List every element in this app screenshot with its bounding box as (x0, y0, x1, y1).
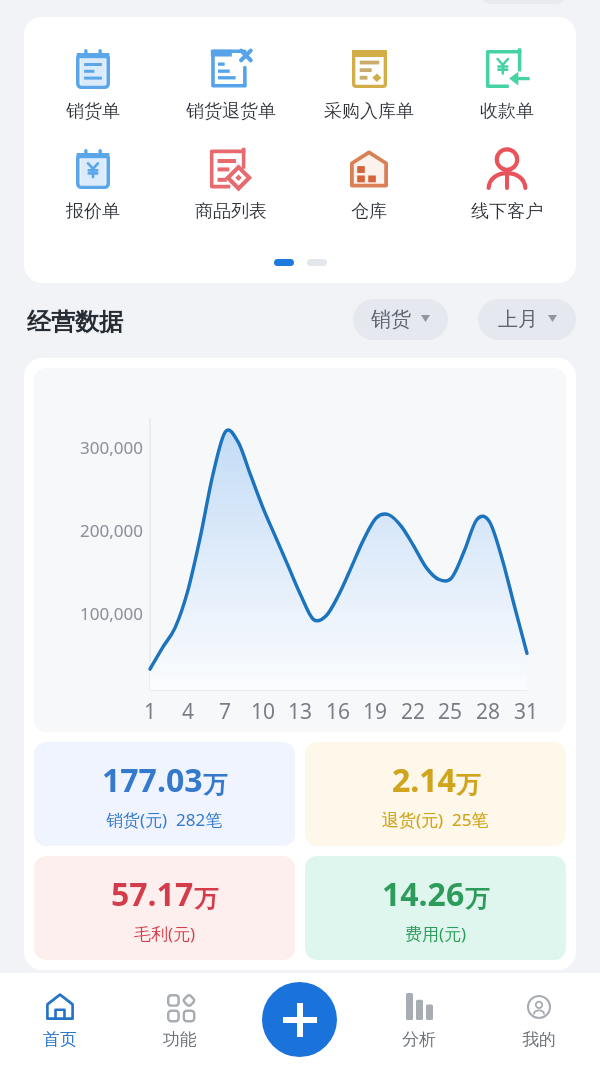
staticText: 1 (144, 697, 157, 726)
staticText: 仓库 (351, 200, 387, 223)
button[interactable]: 177.03 (34, 742, 295, 846)
staticText: 我的 (522, 1029, 556, 1050)
staticText: 退货(元) 25笔 (382, 808, 489, 831)
staticText: 25 (438, 697, 463, 726)
staticText: 销货单 (66, 100, 120, 123)
staticText: 57.17 (111, 872, 194, 916)
staticText: 177.03 (102, 758, 203, 802)
button[interactable]: 报价单 (24, 148, 162, 223)
button[interactable]: 首页 (20, 973, 100, 1067)
staticText: 销货 (371, 307, 411, 332)
staticText: 300,000 (80, 436, 143, 459)
staticText: 万 (456, 770, 480, 800)
staticText: 经营数据 (27, 307, 123, 337)
staticText: 4 (182, 697, 195, 726)
button[interactable]: 收款单 (438, 48, 576, 123)
button[interactable]: 分析 (379, 973, 459, 1067)
staticText: 16 (326, 697, 351, 726)
staticText: 分析 (402, 1029, 436, 1050)
staticText: 100,000 (80, 602, 143, 625)
staticText: 10 (251, 697, 276, 726)
staticText: 13 (288, 697, 313, 726)
button[interactable]: 57.17 (34, 856, 295, 960)
staticText: 28 (476, 697, 501, 726)
button[interactable]: 上月 (478, 299, 576, 340)
button[interactable]: 我的 (499, 973, 579, 1067)
staticText: 毛利(元) (134, 922, 196, 945)
staticText: 14.26 (382, 872, 465, 916)
staticText: 200,000 (80, 519, 143, 542)
button[interactable]: 线下客户 (438, 148, 576, 223)
button[interactable]: 仓库 (300, 148, 438, 223)
staticText: 22 (401, 697, 426, 726)
button[interactable]: 采购入库单 (300, 48, 438, 123)
staticText: 报价单 (66, 200, 120, 223)
staticText: 2.14 (392, 758, 456, 802)
button[interactable]: 功能 (140, 973, 220, 1067)
button[interactable]: 销货 (353, 299, 448, 340)
staticText: 上月 (498, 307, 538, 332)
button[interactable]: 销货退货单 (162, 48, 300, 123)
button[interactable]: 14.26 (305, 856, 566, 960)
staticText: 万 (203, 770, 227, 800)
staticText: 万 (465, 884, 489, 914)
button[interactable]: Add (262, 982, 337, 1057)
staticText: 采购入库单 (324, 100, 414, 123)
staticText: 7 (219, 697, 232, 726)
staticText: 销货(元) 282笔 (106, 808, 223, 831)
staticText: 首页 (43, 1029, 77, 1050)
staticText: 费用(元) (405, 922, 467, 945)
button[interactable]: 销货单 (24, 48, 162, 123)
staticText: 线下客户 (471, 200, 543, 223)
staticText: 销货退货单 (186, 100, 276, 123)
staticText: 19 (363, 697, 388, 726)
button[interactable]: 商品列表 (162, 148, 300, 223)
staticText: 商品列表 (195, 200, 267, 223)
staticText: 功能 (163, 1029, 197, 1050)
button[interactable]: 2.14 (305, 742, 566, 846)
staticText: 31 (514, 697, 539, 726)
staticText: 收款单 (480, 100, 534, 123)
staticText: 万 (194, 884, 218, 914)
